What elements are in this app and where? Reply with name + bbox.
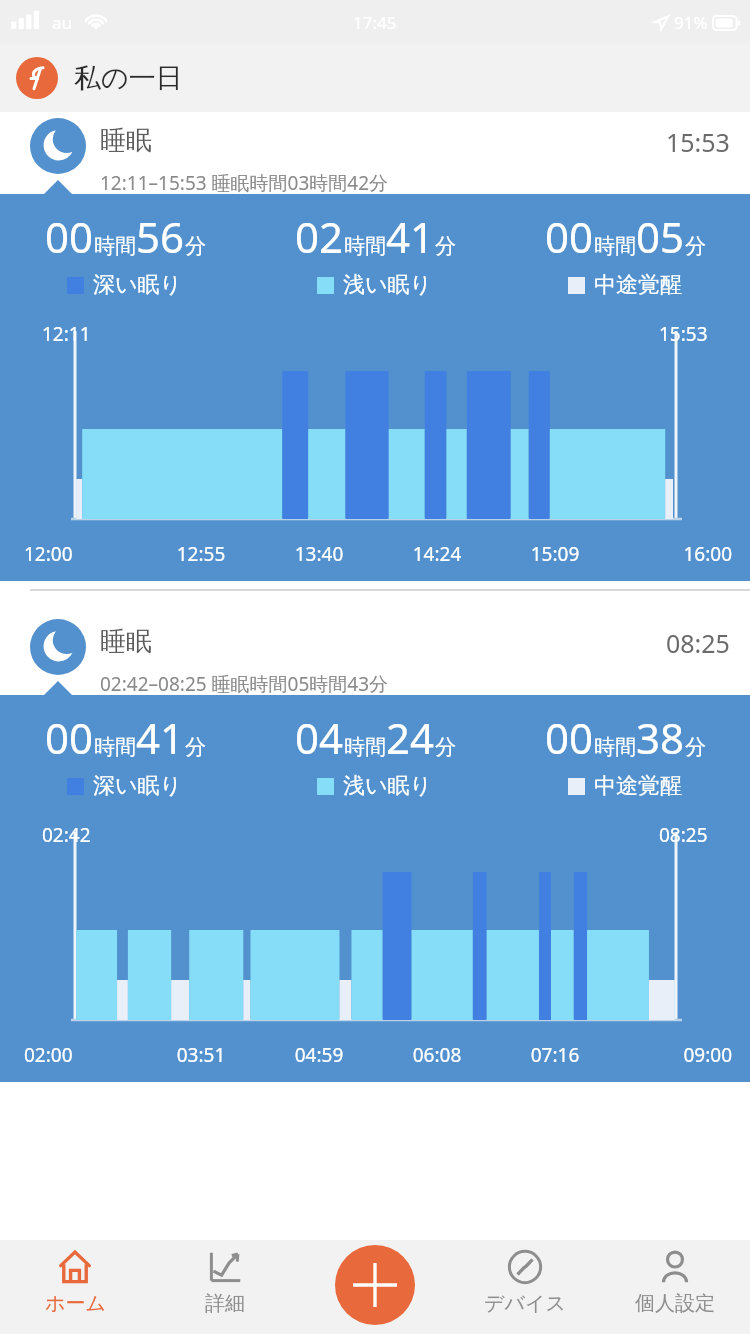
staticText: 08:25 [666,626,730,660]
staticText: 41 [386,208,435,265]
staticText: 04 [295,709,344,766]
staticText: ホーム [45,1291,106,1316]
staticText: 03:51 [142,1042,260,1068]
staticText: 深い眠り [93,271,183,299]
staticText: 02 [295,208,344,265]
staticText: 14:24 [378,541,496,567]
staticText: 分 [435,734,456,760]
staticText: au [52,11,73,34]
staticText: 深い眠り [93,772,183,800]
staticText: 00 [545,709,594,766]
staticText: 分 [185,734,206,760]
staticText: 15:53 [666,125,730,159]
staticText: 分 [685,734,706,760]
staticText: 38 [636,709,685,766]
staticText: 02:42 [42,822,91,848]
staticText: 分 [185,233,206,259]
staticText: 詳細 [205,1291,245,1316]
staticText: 浅い眠り [343,271,433,299]
button[interactable]: デバイス [450,1240,600,1316]
staticText: 06:08 [378,1042,496,1068]
staticText: 15:53 [659,321,708,347]
staticText: 個人設定 [635,1291,715,1316]
staticText: 睡眠 [100,124,152,157]
staticText: 02:00 [24,1042,142,1068]
staticText: 00 [45,709,94,766]
staticText: 08:25 [659,822,708,848]
button[interactable]: ホーム [0,1240,150,1316]
staticText: 中途覚醒 [594,271,682,299]
staticText: 分 [435,233,456,259]
staticText: 時間 [94,734,136,760]
staticText: 16:00 [614,541,732,567]
staticText: 04:59 [260,1042,378,1068]
staticText: 時間 [94,233,136,259]
staticText: 時間 [594,233,636,259]
staticText: 浅い眠り [343,772,433,800]
staticText: 05 [636,208,685,265]
staticText: 91% [674,11,708,34]
staticText: 00 [45,208,94,265]
staticText: 00 [545,208,594,265]
staticText: 12:55 [142,541,260,567]
staticText: 41 [136,709,185,766]
button[interactable]: 追加 [335,1245,415,1325]
staticText: デバイス [484,1291,566,1316]
staticText: 中途覚醒 [594,772,682,800]
staticText: 02:42–08:25 睡眠時間05時間43分 [100,671,389,695]
staticText: 12:11–15:53 睡眠時間03時間42分 [100,170,389,194]
button[interactable]: 個人設定 [600,1240,750,1316]
staticText: 睡眠 [100,625,152,658]
staticText: 24 [386,709,435,766]
staticText: 17:45 [353,11,397,34]
button[interactable]: 詳細 [150,1240,300,1316]
staticText: 時間 [344,233,386,259]
staticText: 12:11 [42,321,91,347]
staticText: 分 [685,233,706,259]
staticText: 12:00 [24,541,142,567]
staticText: 13:40 [260,541,378,567]
staticText: 15:09 [496,541,614,567]
staticText: 時間 [344,734,386,760]
staticText: 時間 [594,734,636,760]
staticText: 私の一日 [74,61,183,95]
staticText: 56 [136,208,185,265]
staticText: 07:16 [496,1042,614,1068]
staticText: 09:00 [614,1042,732,1068]
